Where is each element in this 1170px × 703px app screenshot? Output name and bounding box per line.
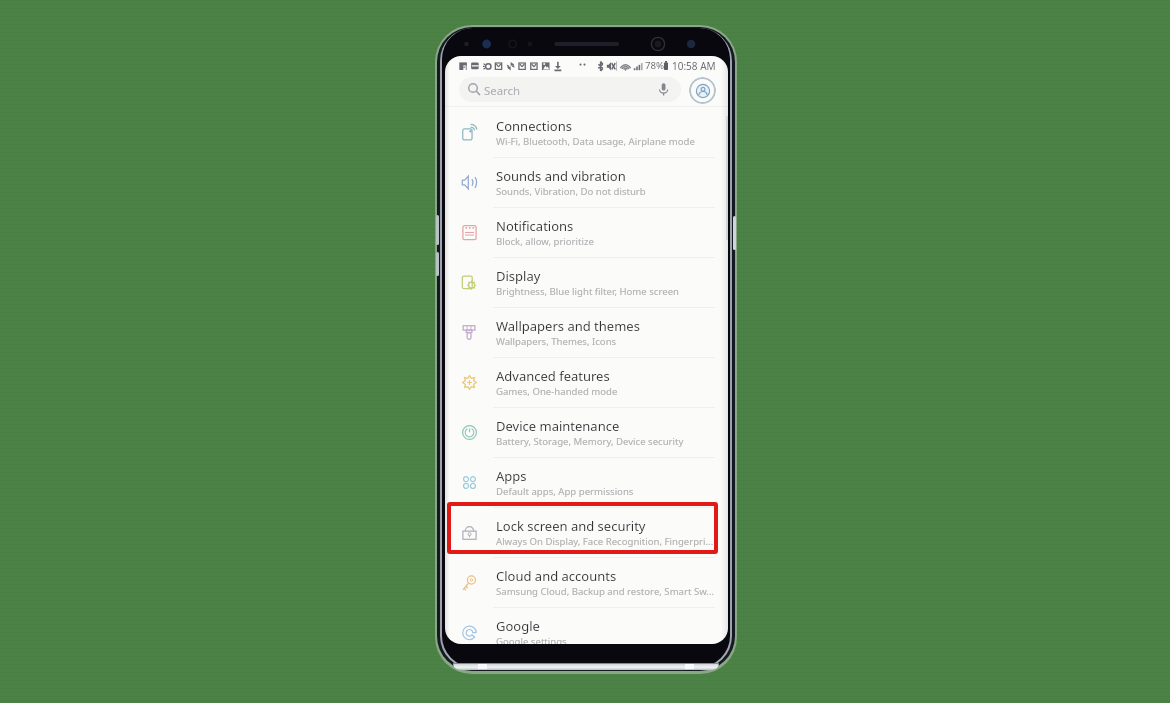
button[interactable]: Display bbox=[445, 258, 728, 308]
button[interactable]: Connections bbox=[445, 108, 728, 158]
button[interactable]: Wallpapers and themes bbox=[445, 308, 728, 358]
button[interactable]: Lock screen and security bbox=[445, 508, 728, 558]
staticText: Device maintenance bbox=[496, 417, 620, 435]
other: Search bbox=[468, 83, 481, 96]
staticText: Samsung Cloud, Backup and restore, Smart… bbox=[496, 585, 726, 598]
staticText: Block, allow, prioritize bbox=[496, 235, 726, 248]
staticText: Cloud and accounts bbox=[496, 567, 617, 585]
button[interactable]: Advanced features bbox=[445, 358, 728, 408]
staticText: Search bbox=[484, 83, 521, 99]
staticText: Always On Display, Face Recognition, Fin… bbox=[496, 535, 726, 548]
staticText: 78% bbox=[645, 59, 665, 72]
button[interactable]: Sounds and vibration bbox=[445, 158, 728, 208]
staticText: Default apps, App permissions bbox=[496, 485, 726, 498]
button[interactable]: Apps bbox=[445, 458, 728, 508]
staticText: Display bbox=[496, 267, 541, 285]
staticText: Google bbox=[496, 617, 540, 635]
staticText: Google settings bbox=[496, 635, 726, 644]
staticText: Connections bbox=[496, 117, 572, 135]
staticText: Apps bbox=[496, 467, 527, 485]
staticText: Games, One-handed mode bbox=[496, 385, 726, 398]
staticText: Wallpapers and themes bbox=[496, 317, 640, 335]
staticText: 10:58 AM bbox=[672, 59, 716, 73]
other: Voice search bbox=[658, 82, 669, 98]
staticText: Wallpapers, Themes, Icons bbox=[496, 335, 726, 348]
staticText: Brightness, Blue light filter, Home scre… bbox=[496, 285, 726, 298]
button[interactable]: Search bbox=[459, 77, 681, 102]
button[interactable]: Cloud and accounts bbox=[445, 558, 728, 608]
staticText: Advanced features bbox=[496, 367, 610, 385]
staticText: Battery, Storage, Memory, Device securit… bbox=[496, 435, 726, 448]
button[interactable]: Account bbox=[689, 77, 716, 104]
staticText: Sounds and vibration bbox=[496, 167, 626, 185]
staticText: Lock screen and security bbox=[496, 517, 646, 535]
button[interactable]: Device maintenance bbox=[445, 408, 728, 458]
staticText: Sounds, Vibration, Do not disturb bbox=[496, 185, 726, 198]
staticText: Wi-Fi, Bluetooth, Data usage, Airplane m… bbox=[496, 135, 726, 148]
button[interactable]: Notifications bbox=[445, 208, 728, 258]
button[interactable]: Google bbox=[445, 608, 728, 644]
staticText: Notifications bbox=[496, 217, 574, 235]
